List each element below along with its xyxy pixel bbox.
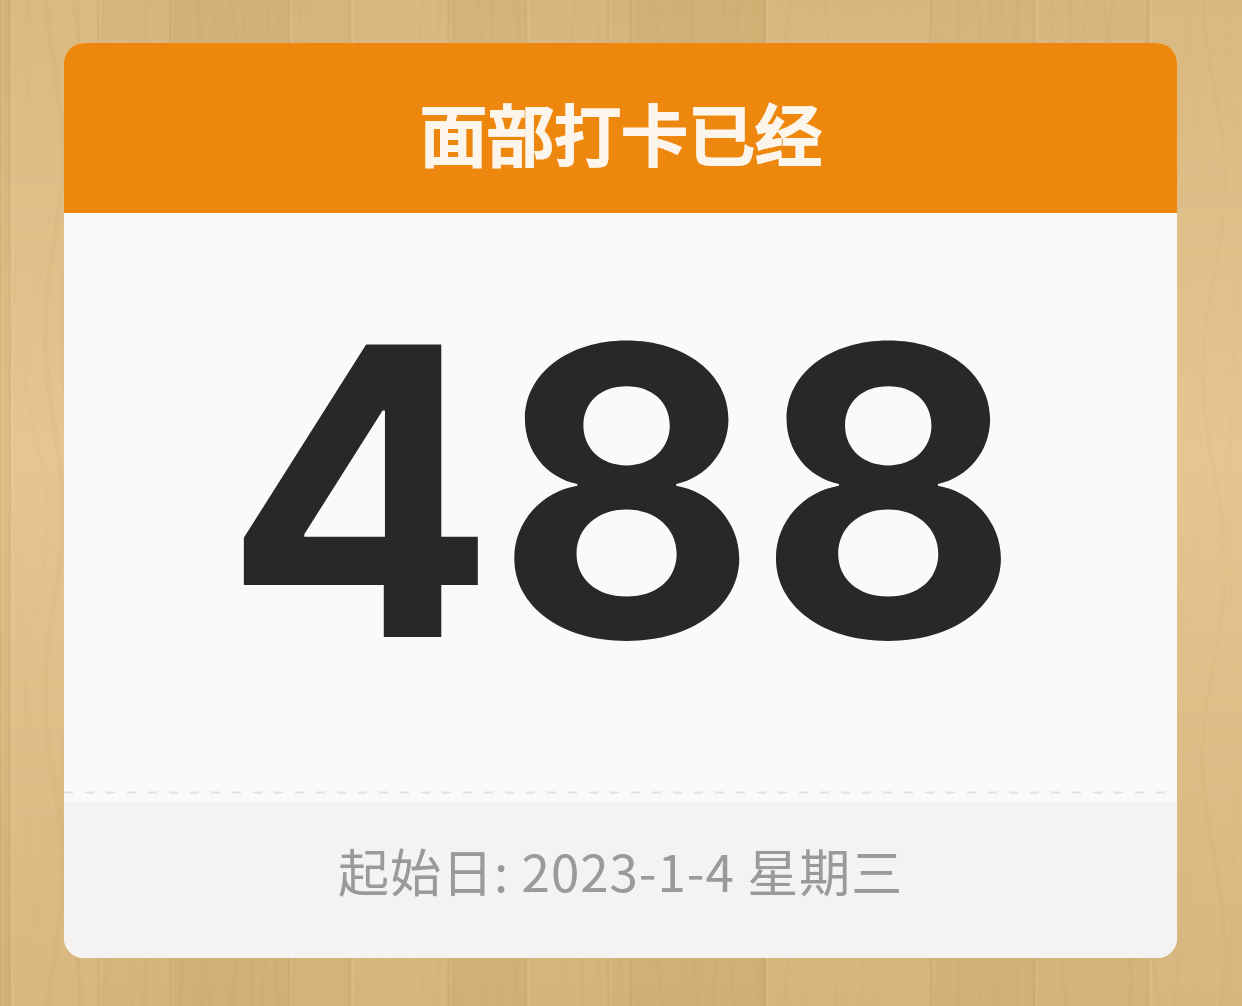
staticText: 起始日: 2023-1-4 星期三 (338, 833, 904, 907)
staticText: 面部打卡已经 (420, 83, 822, 180)
button[interactable]: 面部打卡已经 (64, 43, 1177, 958)
staticText: 488 (224, 248, 1020, 734)
